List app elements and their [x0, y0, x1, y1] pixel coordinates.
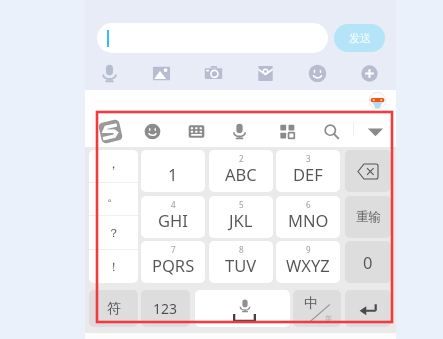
button[interactable]: 6: [276, 196, 340, 238]
button[interactable]: Voice input: [225, 117, 253, 145]
staticText: ，: [107, 155, 120, 171]
button[interactable]: 1: [141, 150, 205, 192]
button[interactable]: Sticker: [368, 91, 386, 109]
button[interactable]: Hide keyboard: [361, 117, 389, 145]
button[interactable]: Emoticons: [138, 117, 166, 145]
staticText: 4: [171, 199, 176, 210]
staticText: MNO: [288, 209, 329, 231]
staticText: 7: [171, 244, 176, 255]
button[interactable]: ，: [89, 150, 138, 182]
staticText: ABC: [225, 163, 257, 185]
button[interactable]: 中: [293, 290, 341, 327]
staticText: 6: [306, 199, 311, 210]
button[interactable]: More: [357, 61, 381, 85]
staticText: 0: [363, 251, 373, 273]
button[interactable]: 。: [89, 183, 138, 215]
staticText: DEF: [293, 163, 323, 185]
button[interactable]: 9: [276, 241, 340, 283]
button[interactable]: Keyboard layout: [182, 117, 210, 145]
staticText: 中: [304, 295, 318, 313]
staticText: PQRS: [152, 254, 195, 276]
button[interactable]: 发送: [334, 24, 385, 52]
staticText: 9: [306, 244, 311, 255]
staticText: 2: [239, 153, 244, 164]
button[interactable]: 0: [345, 241, 391, 283]
button[interactable]: Photo: [149, 61, 173, 85]
button[interactable]: 2: [209, 150, 273, 192]
button[interactable]: 5: [209, 196, 273, 238]
staticText: ！: [108, 259, 120, 274]
staticText: 发送: [349, 31, 371, 45]
staticText: 1: [168, 163, 178, 185]
button[interactable]: Backspace: [345, 150, 391, 192]
button[interactable]: 123: [141, 290, 190, 327]
button[interactable]: Enter: [345, 290, 391, 327]
button[interactable]: 8: [209, 241, 273, 283]
button[interactable]: Space / voice: [195, 290, 290, 327]
button[interactable]: 7: [141, 241, 205, 283]
staticText: 5: [239, 199, 244, 210]
button[interactable]: ！: [89, 250, 138, 283]
staticText: 3: [306, 153, 311, 164]
staticText: GHI: [158, 209, 188, 231]
button[interactable]: Voice message: [97, 61, 121, 85]
button[interactable]: Camera: [201, 61, 225, 85]
button[interactable]: ？: [89, 216, 138, 249]
button[interactable]: Emoji: [305, 61, 329, 85]
button[interactable]: More tools: [273, 117, 301, 145]
staticText: 。: [107, 188, 120, 204]
staticText: TUV: [225, 254, 257, 276]
button[interactable]: 3: [276, 150, 340, 192]
button[interactable]: [97, 23, 328, 53]
staticText: WXYZ: [286, 254, 330, 276]
staticText: 重输: [356, 209, 381, 225]
staticText: 符: [107, 300, 121, 318]
button[interactable]: Search: [317, 117, 345, 145]
staticText: 123: [153, 299, 178, 318]
button[interactable]: 符: [89, 290, 138, 327]
button[interactable]: Red packet: [253, 61, 277, 85]
button[interactable]: 重输: [345, 196, 391, 238]
staticText: 英: [325, 314, 332, 323]
button[interactable]: 4: [141, 196, 205, 238]
staticText: JKL: [229, 209, 253, 231]
staticText: ？: [108, 225, 120, 240]
staticText: 8: [239, 244, 244, 255]
button[interactable]: Sogou input: [96, 117, 124, 145]
